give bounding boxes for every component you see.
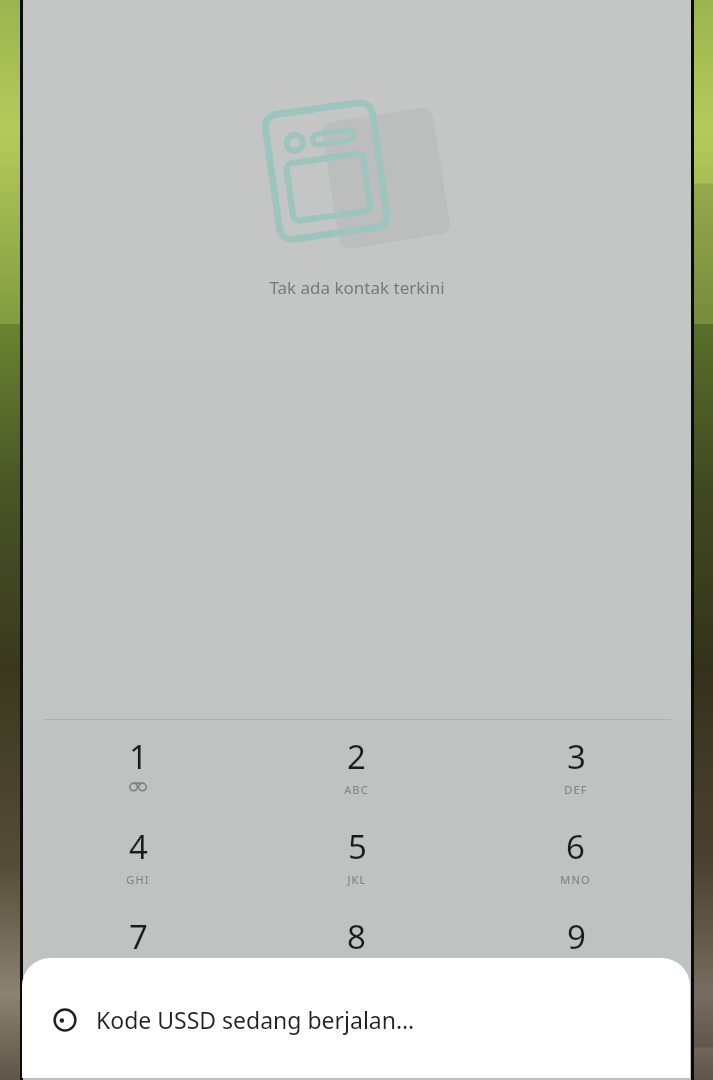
button[interactable]: 5	[247, 824, 466, 914]
staticText: 3	[567, 734, 586, 779]
button[interactable]: 3	[466, 734, 685, 824]
staticText: ABC	[344, 782, 369, 797]
other: Loading	[52, 1007, 78, 1033]
staticText: Kode USSD sedang berjalan…	[96, 1004, 415, 1035]
staticText: 0	[347, 1004, 366, 1049]
button[interactable]: 2	[247, 734, 466, 824]
staticText: *	[129, 1004, 148, 1049]
staticText: MNO	[560, 872, 591, 887]
button[interactable]: #	[466, 1004, 685, 1080]
staticText: 7	[129, 914, 148, 959]
staticText: 1	[129, 734, 148, 779]
button[interactable]: 1	[29, 734, 247, 824]
button[interactable]: *	[29, 1004, 247, 1080]
button[interactable]: 9	[466, 914, 685, 1004]
button[interactable]: Loading	[22, 958, 690, 1078]
staticText: Tak ada kontak terkini	[269, 276, 445, 299]
button[interactable]: 7	[29, 914, 247, 1004]
staticText: 8	[347, 914, 366, 959]
staticText: 5	[348, 824, 367, 869]
button[interactable]: 4	[29, 824, 247, 914]
staticText: 6	[566, 824, 585, 869]
button[interactable]: 8	[247, 914, 466, 1004]
staticText: 9	[567, 914, 586, 959]
button[interactable]: 6	[466, 824, 685, 914]
staticText: 2	[347, 734, 366, 779]
button[interactable]: 0	[247, 1004, 466, 1080]
staticText: JKL	[347, 872, 367, 887]
staticText: GHI	[126, 872, 150, 887]
staticText: 4	[129, 824, 148, 869]
staticText: DEF	[564, 782, 588, 797]
